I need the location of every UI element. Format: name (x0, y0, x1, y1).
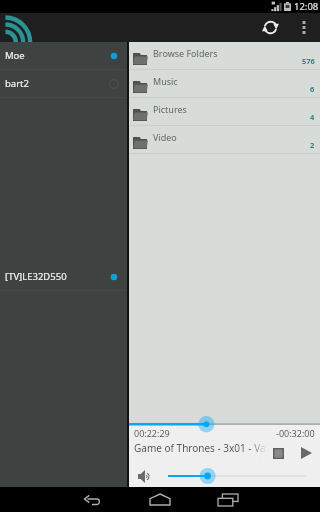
staticText: [TV]LE32D550 (5, 270, 67, 283)
button[interactable]: Pictures (129, 98, 320, 125)
button[interactable]: Stop (267, 441, 289, 465)
staticText: 6 (310, 84, 315, 94)
staticText: -00:32:00 (276, 427, 315, 439)
staticText: bart2 (5, 77, 29, 90)
staticText: Browse Folders (153, 47, 218, 59)
button[interactable]: Volume (133, 465, 155, 487)
button[interactable]: Home (126, 487, 194, 512)
button[interactable]: Browse Folders (129, 42, 320, 69)
staticText: 4 (310, 112, 315, 122)
button[interactable]: Moe (0, 42, 127, 69)
staticText: Pictures (153, 103, 187, 115)
staticText: Moe (5, 49, 25, 62)
button[interactable]: bart2 (0, 70, 127, 97)
button[interactable]: Back (58, 487, 126, 512)
button[interactable]: Refresh (253, 13, 287, 42)
button[interactable]: Recents (194, 487, 262, 512)
staticText: Game of Thrones - 3x01 - Valar Dohaeris (134, 441, 267, 455)
button[interactable]: Music (129, 70, 320, 97)
staticText: Music (153, 75, 178, 87)
button[interactable]: Video (129, 126, 320, 153)
staticText: Video (153, 131, 177, 143)
staticText: 12:08 (294, 0, 319, 13)
staticText: 576 (302, 56, 315, 66)
button[interactable]: [TV]LE32D550 (0, 263, 127, 290)
staticText: 2 (310, 140, 315, 150)
staticText: 00:22:29 (134, 427, 170, 439)
button[interactable]: More options (287, 13, 320, 42)
button[interactable]: Play (295, 441, 317, 465)
